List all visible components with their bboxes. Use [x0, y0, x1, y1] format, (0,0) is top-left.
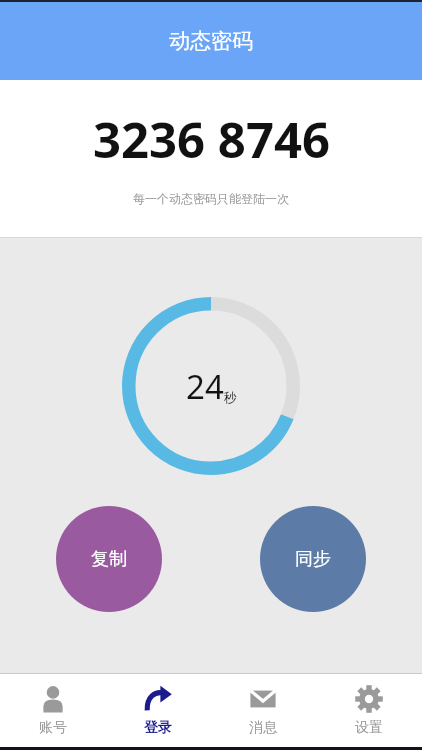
button[interactable]: 复制 [56, 506, 162, 612]
staticText: 24 [186, 364, 224, 409]
staticText: 设置 [355, 719, 383, 737]
staticText: 动态密码 [169, 28, 253, 54]
staticText: 3236 8746 [93, 106, 330, 173]
button[interactable]: 消息 [210, 674, 316, 747]
staticText: 复制 [91, 548, 127, 571]
staticText: 秒 [224, 389, 237, 405]
staticText: 登录 [144, 719, 172, 737]
button[interactable]: 账号 [0, 674, 105, 747]
staticText: 同步 [295, 548, 331, 571]
button[interactable]: 同步 [260, 506, 366, 612]
staticText: 账号 [39, 719, 67, 737]
button[interactable]: 登录 [105, 674, 210, 747]
staticText: 每一个动态密码只能登陆一次 [133, 191, 289, 206]
button[interactable]: 设置 [316, 674, 422, 747]
staticText: 消息 [249, 719, 277, 737]
